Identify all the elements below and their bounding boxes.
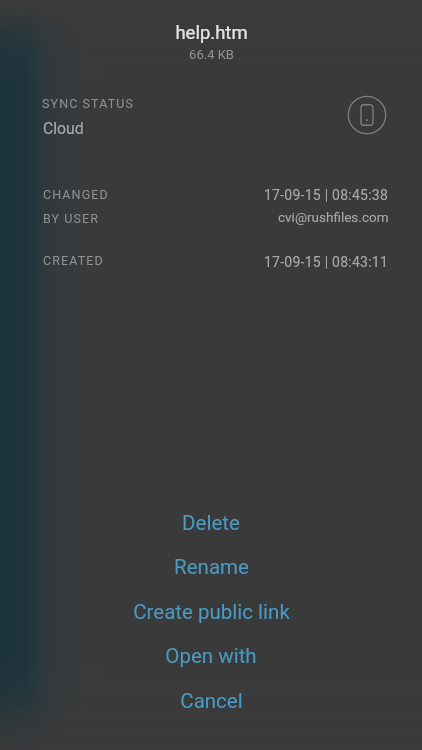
staticText: cvi@rushfiles.com xyxy=(278,209,389,225)
button[interactable]: Rename xyxy=(0,545,422,589)
staticText: help.htm xyxy=(175,22,248,44)
button[interactable]: Open with xyxy=(0,634,422,678)
staticText: Create public link xyxy=(133,600,290,624)
staticText: CREATED xyxy=(43,253,104,268)
button[interactable]: Create public link xyxy=(0,590,422,634)
staticText: Rename xyxy=(174,555,249,579)
staticText: SYNC STATUS xyxy=(42,96,134,111)
staticText: CHANGED xyxy=(43,187,109,202)
button[interactable]: Cancel xyxy=(0,679,422,723)
staticText: Cancel xyxy=(180,689,243,713)
staticText: 17-09-15 | 08:43:11 xyxy=(264,254,389,270)
staticText: BY USER xyxy=(43,211,100,226)
staticText: Open with xyxy=(165,644,257,668)
staticText: 17-09-15 | 08:45:38 xyxy=(264,187,389,203)
button[interactable]: Delete xyxy=(0,501,422,545)
staticText: 66.4 KB xyxy=(189,47,234,62)
button[interactable]: Device sync status xyxy=(347,95,387,135)
staticText: Cloud xyxy=(43,119,84,137)
staticText: Delete xyxy=(182,511,240,535)
